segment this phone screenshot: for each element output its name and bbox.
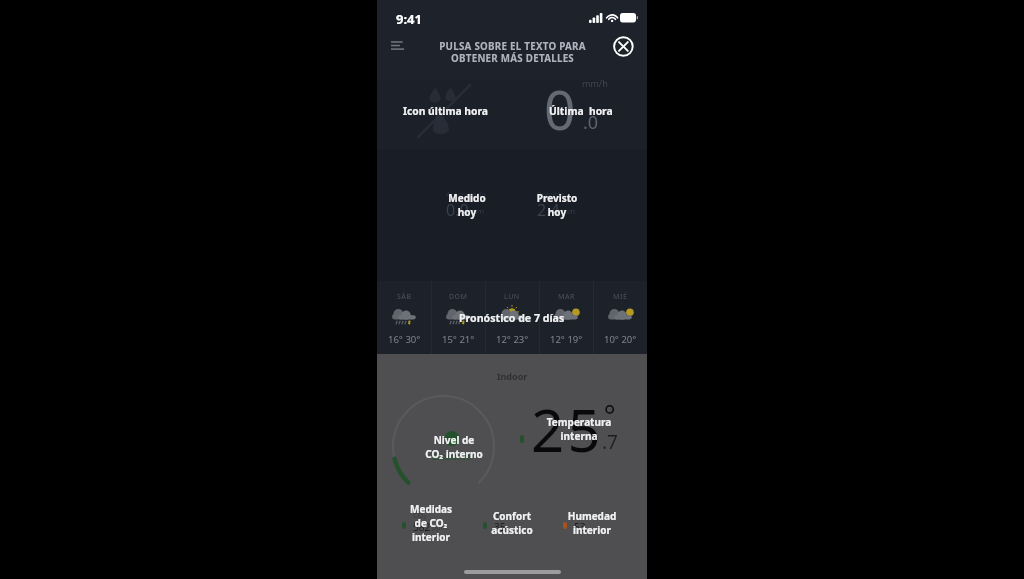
staticText: 582	[413, 520, 431, 534]
button[interactable]: SÁB	[377, 281, 431, 354]
button[interactable]: Última hora	[549, 104, 613, 118]
staticText: ppm	[432, 523, 448, 533]
button[interactable]: Nivel de CO₂ interno	[425, 433, 483, 461]
staticText: %	[574, 510, 581, 520]
button[interactable]: Confort acústico	[480, 509, 544, 537]
staticText: 2.4	[537, 199, 560, 221]
button[interactable]: Pronóstico de 7 días	[459, 311, 565, 325]
staticText: 10° 20°	[604, 333, 637, 346]
button[interactable]: DOM	[431, 281, 485, 354]
staticText: Excelente	[432, 451, 471, 462]
button[interactable]: MIÉ	[593, 281, 647, 354]
button[interactable]: Medidas de CO₂ interior	[399, 502, 463, 544]
staticText: LUN	[504, 292, 520, 302]
staticText: Previsto	[537, 189, 566, 199]
staticText: .7	[602, 429, 618, 455]
staticText: 12° 23°	[496, 333, 529, 346]
staticText: 12° 19°	[550, 333, 583, 346]
staticText: dB	[494, 510, 504, 520]
staticText: mm	[470, 206, 485, 216]
button[interactable]: Temperatura interna	[544, 415, 614, 443]
button[interactable]: Icon última hora	[403, 104, 489, 118]
button[interactable]: Menu	[385, 30, 411, 56]
staticText: .0	[583, 110, 599, 135]
staticText: 15° 21°	[442, 333, 475, 346]
button[interactable]: Humedad interior	[560, 509, 624, 537]
staticText: mm/h	[582, 77, 608, 89]
staticText: MAR	[558, 292, 575, 302]
staticText: PULSA SOBRE EL TEXTO PARA OBTENER MÁS DE…	[439, 40, 586, 65]
staticText: Acumulado	[446, 189, 486, 199]
button[interactable]: Previsto hoy	[525, 191, 589, 219]
button[interactable]: LUN	[485, 281, 539, 354]
staticText: 0.0	[446, 199, 469, 221]
staticText: 35	[494, 520, 506, 534]
staticText: 9:41	[396, 10, 422, 28]
staticText: 16° 30°	[388, 333, 421, 346]
staticText: SÁB	[397, 292, 412, 302]
staticText: MIÉ	[613, 292, 628, 302]
button[interactable]: Close	[610, 30, 637, 57]
staticText: Indoor	[497, 370, 528, 382]
staticText: 53	[574, 520, 586, 534]
button[interactable]: Medido hoy	[435, 191, 499, 219]
staticText: 25	[531, 390, 604, 469]
staticText: mm	[561, 206, 576, 216]
button[interactable]: MAR	[539, 281, 593, 354]
staticText: DOM	[449, 292, 468, 302]
staticText: CO₂	[413, 510, 427, 520]
staticText: 0	[544, 71, 576, 140]
